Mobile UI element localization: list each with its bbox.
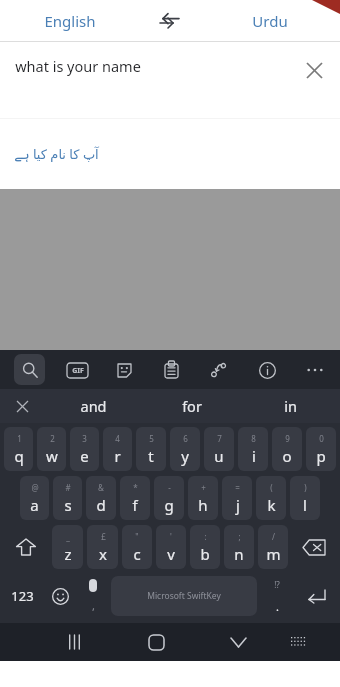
staticText: h: [198, 495, 208, 515]
button[interactable]: Voice input: [78, 573, 108, 619]
staticText: o: [282, 446, 292, 466]
staticText: 3: [82, 433, 87, 444]
staticText: !?: [274, 579, 280, 590]
staticText: ": [135, 531, 139, 542]
staticText: /: [272, 531, 275, 542]
staticText: b: [200, 544, 210, 564]
staticText: 2: [50, 433, 55, 444]
staticText: m: [266, 544, 281, 564]
button[interactable]: ;: [224, 525, 254, 569]
staticText: 6: [183, 433, 188, 444]
button[interactable]: in: [241, 389, 340, 423]
button[interactable]: Translate: [204, 355, 234, 385]
button[interactable]: More options: [300, 355, 330, 385]
button[interactable]: for: [142, 389, 241, 423]
staticText: for: [182, 396, 202, 416]
staticText: ,: [92, 598, 95, 613]
button[interactable]: ): [290, 476, 320, 520]
button[interactable]: Close suggestions: [0, 389, 44, 423]
button[interactable]: Shift: [2, 524, 50, 570]
staticText: Microsoft SwiftKey: [147, 590, 221, 602]
staticText: ;: [238, 531, 241, 542]
button[interactable]: Hide keyboard: [218, 623, 258, 661]
staticText: Urdu: [252, 11, 288, 31]
staticText: 0: [319, 433, 324, 444]
button[interactable]: Clear text: [294, 50, 334, 90]
button[interactable]: (: [256, 476, 286, 520]
button[interactable]: 7: [204, 427, 234, 471]
button[interactable]: :: [190, 525, 220, 569]
button[interactable]: &: [86, 476, 116, 520]
staticText: 5: [149, 433, 154, 444]
button[interactable]: Home: [136, 623, 176, 661]
staticText: i: [252, 446, 256, 466]
button[interactable]: #: [53, 476, 82, 520]
staticText: k: [267, 495, 276, 515]
staticText: ': [170, 531, 172, 542]
staticText: r: [114, 446, 121, 466]
button[interactable]: 9: [272, 427, 302, 471]
staticText: -: [168, 482, 171, 493]
staticText: &: [98, 482, 104, 493]
button[interactable]: _: [52, 525, 83, 569]
button[interactable]: Urdu: [200, 0, 340, 41]
button[interactable]: English: [0, 0, 140, 41]
button[interactable]: 123: [2, 573, 42, 619]
staticText: @: [31, 482, 39, 493]
button[interactable]: @: [20, 476, 49, 520]
button[interactable]: -: [154, 476, 184, 520]
staticText: £: [101, 531, 106, 542]
staticText: g: [164, 495, 174, 515]
staticText: +: [201, 482, 206, 493]
button[interactable]: Recent apps: [54, 623, 94, 661]
button[interactable]: Backspace: [290, 524, 338, 570]
staticText: 9: [285, 433, 290, 444]
button[interactable]: 1: [4, 427, 33, 471]
staticText: 7: [217, 433, 222, 444]
staticText: n: [234, 544, 244, 564]
staticText: 8: [251, 433, 256, 444]
button[interactable]: Enter: [294, 573, 338, 619]
staticText: what is your name: [15, 56, 141, 76]
button[interactable]: /: [258, 525, 288, 569]
staticText: #: [65, 482, 71, 493]
button[interactable]: Clipboard: [156, 355, 186, 385]
button[interactable]: and: [44, 389, 142, 423]
button[interactable]: 2: [37, 427, 66, 471]
staticText: p: [316, 446, 326, 466]
staticText: (: [270, 482, 273, 493]
staticText: f: [132, 495, 138, 515]
button[interactable]: GIF: [62, 355, 92, 385]
button[interactable]: Microsoft SwiftKey: [111, 576, 257, 616]
staticText: 4: [115, 433, 120, 444]
staticText: and: [80, 396, 107, 416]
staticText: ): [304, 482, 307, 493]
button[interactable]: +: [188, 476, 218, 520]
button[interactable]: 8: [238, 427, 268, 471]
button[interactable]: ": [122, 525, 152, 569]
button[interactable]: Search: [14, 354, 45, 385]
button[interactable]: 6: [170, 427, 200, 471]
staticText: 123: [11, 587, 34, 605]
button[interactable]: ': [156, 525, 186, 569]
staticText: s: [64, 495, 72, 515]
button[interactable]: Info: [252, 355, 282, 385]
staticText: q: [14, 446, 24, 466]
staticText: j: [236, 495, 240, 515]
button[interactable]: £: [87, 525, 118, 569]
button[interactable]: Stickers: [109, 355, 139, 385]
button[interactable]: =: [222, 476, 252, 520]
button[interactable]: 0: [306, 427, 336, 471]
button[interactable]: 5: [136, 427, 166, 471]
button[interactable]: Swap languages: [140, 0, 200, 41]
staticText: 1: [17, 433, 22, 444]
staticText: English: [44, 11, 96, 31]
button[interactable]: *: [120, 476, 150, 520]
button[interactable]: 4: [103, 427, 132, 471]
button[interactable]: !?: [260, 573, 294, 619]
staticText: =: [235, 482, 240, 493]
button[interactable]: 3: [70, 427, 99, 471]
button[interactable]: Emoji: [42, 573, 78, 619]
staticText: .: [276, 599, 279, 614]
button[interactable]: Switch keyboard: [281, 624, 317, 660]
